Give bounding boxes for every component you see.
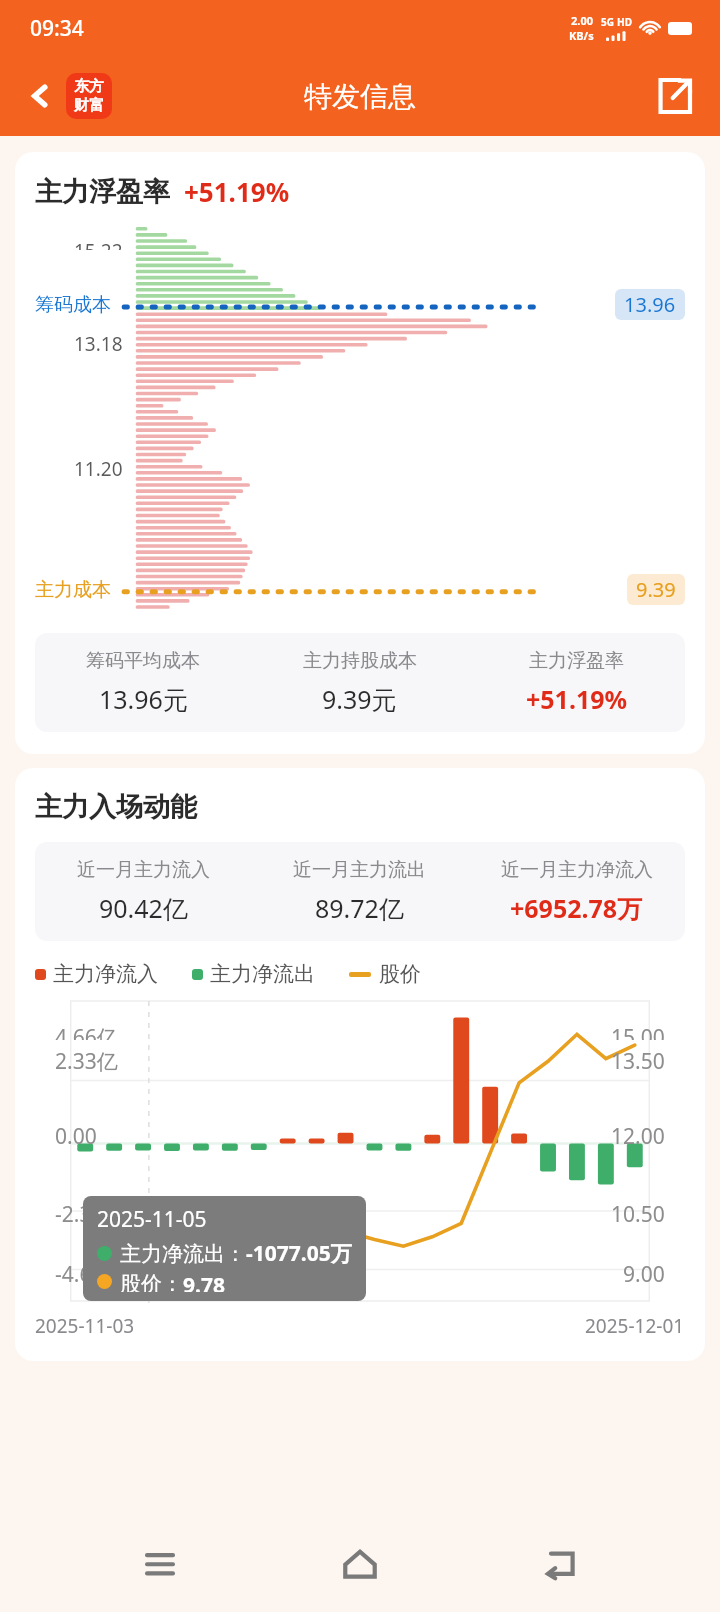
staticText: 09:34: [30, 14, 84, 43]
button[interactable]: Back: [520, 1524, 600, 1604]
staticText: 近一月主力净流入: [501, 858, 653, 882]
staticText: 主力入场动能: [35, 790, 197, 824]
staticText: +51.19%: [184, 174, 290, 209]
staticText: 11.20: [74, 456, 123, 482]
staticText: 10.50: [611, 1200, 665, 1229]
staticText: 9.39元: [322, 682, 397, 716]
staticText: KB/s: [569, 28, 594, 43]
staticText: 9.00: [623, 1260, 665, 1289]
staticText: 主力成本: [35, 578, 111, 602]
staticText: 2025-11-03: [35, 1313, 135, 1339]
staticText: 主力净流出: [210, 961, 315, 987]
staticText: 89.72亿: [315, 891, 404, 925]
staticText: 近一月主力流入: [77, 858, 210, 882]
staticText: 近一月主力流出: [293, 858, 426, 882]
staticText: 特发信息: [304, 79, 416, 114]
staticText: 筹码平均成本: [86, 649, 200, 673]
staticText: 2.00: [571, 13, 593, 28]
staticText: 股价：: [120, 1271, 183, 1292]
staticText: 13.18: [74, 331, 123, 357]
staticText: 15.22: [74, 238, 123, 250]
staticText: 4.66亿: [55, 1023, 118, 1040]
staticText: 主力浮盈率: [35, 175, 170, 209]
staticText: +51.19%: [526, 682, 628, 716]
button[interactable]: 主力浮盈率: [15, 152, 705, 754]
staticText: -4.66亿: [55, 1260, 125, 1289]
staticText: 2.33亿: [55, 1047, 118, 1076]
button[interactable]: Share: [648, 70, 700, 122]
staticText: 股价: [379, 961, 421, 987]
staticText: 主力浮盈率: [529, 649, 624, 673]
staticText: 2025-12-01: [585, 1313, 685, 1339]
staticText: 15.00: [611, 1023, 665, 1040]
staticText: 9.78: [183, 1271, 225, 1292]
staticText: 主力持股成本: [303, 649, 417, 673]
staticText: -2.33亿: [55, 1200, 125, 1229]
staticText: +6952.78万: [510, 891, 643, 925]
button[interactable]: Home: [320, 1524, 400, 1604]
staticText: HD: [617, 15, 632, 29]
staticText: 13.96元: [99, 682, 188, 716]
staticText: 0.00: [55, 1122, 97, 1151]
button[interactable]: East Money: [66, 73, 112, 119]
staticText: 9.39: [636, 576, 676, 603]
staticText: 90.42亿: [99, 891, 188, 925]
staticText: 13.50: [611, 1047, 665, 1076]
button[interactable]: Recent apps: [120, 1524, 200, 1604]
staticText: 13.96: [624, 291, 676, 318]
button[interactable]: 主力入场动能: [15, 768, 705, 1361]
staticText: -1077.05万: [246, 1239, 352, 1268]
staticText: 5G: [601, 15, 614, 29]
staticText: 筹码成本: [35, 293, 111, 317]
button[interactable]: Back: [18, 74, 62, 118]
staticText: 主力净流入: [53, 961, 158, 987]
staticText: 财富: [74, 96, 104, 115]
staticText: 2025-11-05: [97, 1205, 207, 1234]
staticText: 主力净流出：: [120, 1241, 246, 1267]
staticText: 12.00: [611, 1122, 665, 1151]
staticText: 东方: [74, 77, 104, 96]
